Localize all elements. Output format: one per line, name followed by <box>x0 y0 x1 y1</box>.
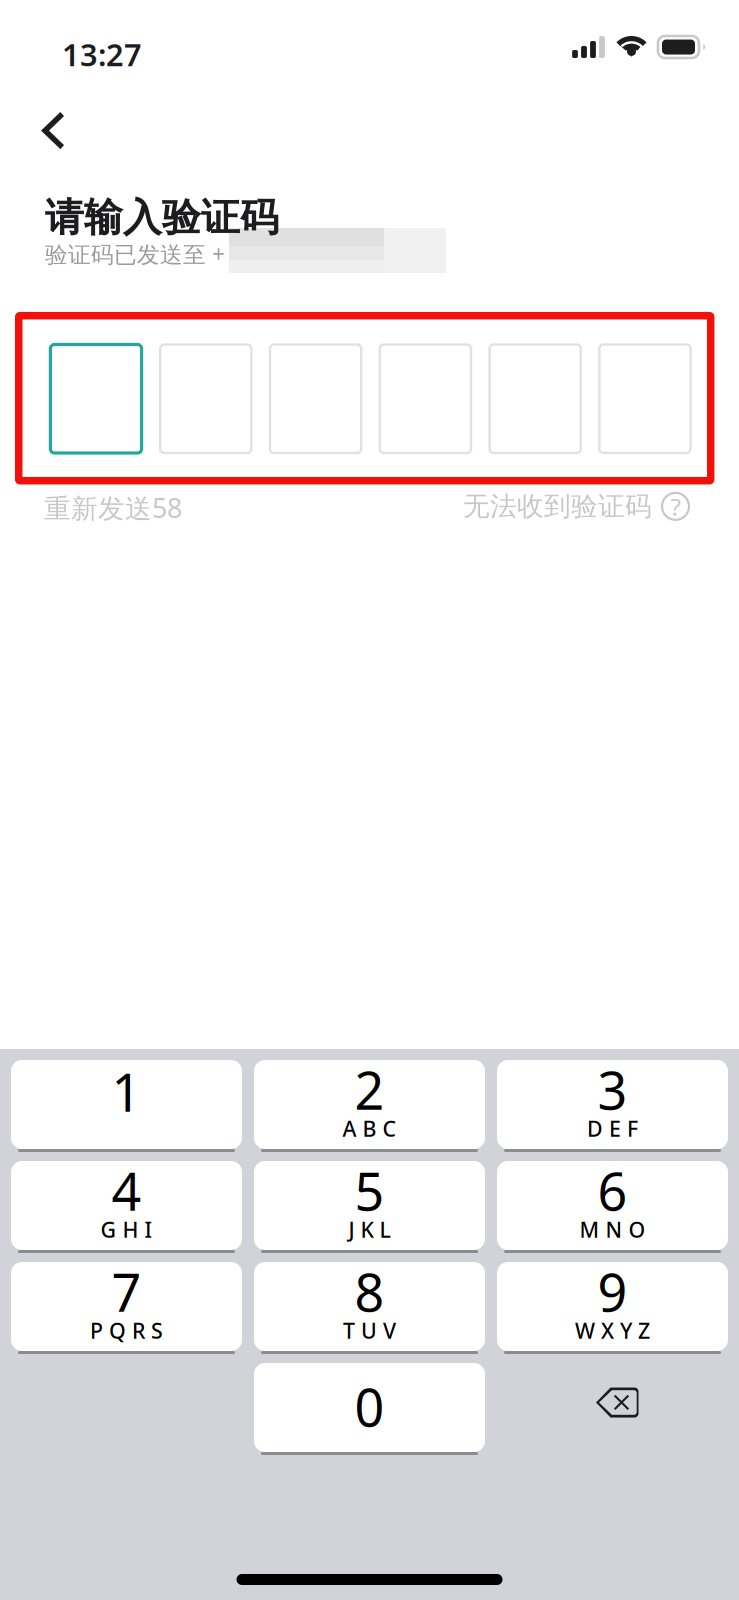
button[interactable]: 7 <box>11 1262 242 1351</box>
staticText: 请输入验证码 <box>45 194 279 241</box>
button[interactable]: 1 <box>11 1060 242 1149</box>
staticText: G H I <box>100 1215 152 1244</box>
button[interactable]: 重新发送58 <box>44 490 182 525</box>
staticText: 6 <box>597 1156 627 1225</box>
button[interactable]: 5 <box>254 1161 485 1250</box>
staticText: J K L <box>348 1215 390 1244</box>
staticText: W X Y Z <box>575 1316 650 1345</box>
staticText: 7 <box>111 1257 141 1326</box>
button[interactable]: 3 <box>497 1060 728 1149</box>
button[interactable]: Delete <box>497 1364 728 1453</box>
staticText: 5 <box>354 1156 384 1225</box>
staticText: A B C <box>342 1114 396 1143</box>
staticText: ? <box>670 490 680 522</box>
staticText: 重新发送58 <box>44 490 182 525</box>
staticText: D E F <box>587 1114 638 1143</box>
staticText: T U V <box>343 1316 396 1345</box>
button[interactable]: 4 <box>11 1161 242 1250</box>
button[interactable]: 0 <box>254 1363 485 1452</box>
staticText: 验证码已发送至 + <box>45 239 225 269</box>
button[interactable]: 8 <box>254 1262 485 1351</box>
staticText: 2 <box>354 1055 384 1124</box>
staticText: P Q R S <box>90 1316 163 1345</box>
staticText: 4 <box>111 1156 141 1225</box>
button[interactable]: 无法收到验证码 <box>463 490 689 523</box>
staticText: 8 <box>354 1257 384 1326</box>
staticText: 0 <box>354 1372 384 1441</box>
staticText: 1 <box>111 1057 141 1126</box>
button[interactable]: 2 <box>254 1060 485 1149</box>
staticText: M N O <box>579 1215 645 1244</box>
staticText: 9 <box>597 1257 627 1326</box>
staticText: 无法收到验证码 <box>463 490 652 523</box>
button[interactable]: 6 <box>497 1161 728 1250</box>
button[interactable]: 9 <box>497 1262 728 1351</box>
staticText: 3 <box>597 1055 627 1124</box>
button[interactable]: Back <box>18 93 98 169</box>
staticText: 13:27 <box>62 34 142 75</box>
